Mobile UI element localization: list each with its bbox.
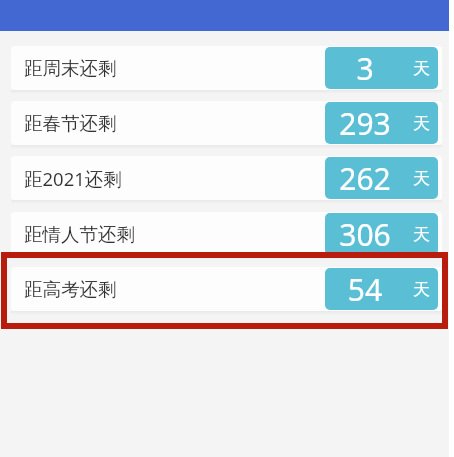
button[interactable]: 距周末还剩 [11, 46, 442, 90]
staticText: 262 [325, 158, 405, 199]
staticText: 天 [413, 279, 430, 300]
staticText: 54 [325, 269, 405, 310]
staticText: 距周末还剩 [24, 57, 117, 80]
staticText: 距2021还剩 [24, 166, 122, 191]
button[interactable]: 距2021还剩 [11, 156, 442, 200]
staticText: 293 [325, 103, 405, 144]
staticText: 距情人节还剩 [24, 223, 135, 246]
staticText: 天 [413, 168, 430, 189]
button[interactable]: 距高考还剩 [11, 267, 442, 311]
staticText: 天 [413, 224, 430, 245]
staticText: 天 [413, 58, 430, 79]
button[interactable]: 距情人节还剩 [11, 212, 442, 256]
staticText: 距高考还剩 [24, 278, 117, 301]
button[interactable]: 距春节还剩 [11, 101, 442, 145]
staticText: 306 [325, 214, 405, 255]
staticText: 3 [325, 48, 405, 89]
staticText: 距春节还剩 [24, 112, 117, 135]
staticText: 天 [413, 113, 430, 134]
